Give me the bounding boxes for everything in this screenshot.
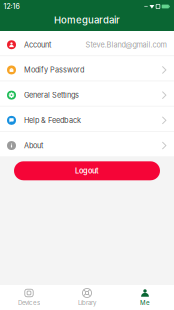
button[interactable]: General Settings xyxy=(0,81,174,106)
staticText: Steve.Bland@gmail.com xyxy=(85,40,166,49)
button[interactable]: Me xyxy=(116,285,174,310)
staticText: Homeguardair xyxy=(54,14,120,26)
staticText: Logout xyxy=(75,166,99,175)
staticText: About xyxy=(24,141,43,150)
button[interactable]: About xyxy=(0,132,174,156)
staticText: Library xyxy=(78,299,96,306)
button[interactable]: Help & Feedback xyxy=(0,107,174,131)
staticText: Devices xyxy=(18,299,40,306)
staticText: Account xyxy=(24,40,51,49)
staticText: Help & Feedback xyxy=(24,116,81,125)
button[interactable]: Modify Password xyxy=(0,56,174,81)
staticText: Me xyxy=(140,299,150,306)
button[interactable]: Account xyxy=(0,31,174,55)
button[interactable]: Devices xyxy=(0,285,58,310)
button[interactable]: Logout xyxy=(14,161,160,180)
staticText: Modify Password xyxy=(24,65,84,74)
staticText: General Settings xyxy=(24,91,79,100)
button[interactable]: Library xyxy=(58,285,116,310)
staticText: 12:16 xyxy=(3,2,19,11)
